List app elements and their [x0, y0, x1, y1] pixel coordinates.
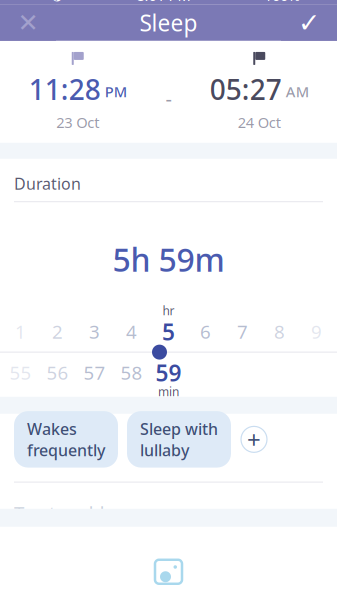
staticText: ◑	[51, 0, 63, 3]
staticText: 55	[9, 360, 31, 385]
staticText: 3	[89, 319, 100, 344]
staticText: 7	[237, 319, 248, 344]
staticText: ✓	[298, 8, 320, 38]
button[interactable]: Sleep with lullaby	[127, 411, 231, 468]
staticText: 57	[83, 360, 105, 385]
button[interactable]: Close	[0, 5, 56, 41]
staticText: 56	[46, 360, 68, 385]
staticText: Wakes frequently	[27, 418, 105, 461]
button[interactable]: 05:27	[181, 51, 337, 132]
button[interactable]: Save	[281, 5, 337, 41]
staticText: -	[165, 85, 171, 112]
staticText: 1	[15, 319, 26, 344]
staticText: 8	[274, 319, 285, 344]
staticText: 100%	[264, 0, 300, 5]
staticText: 23 Oct	[56, 113, 99, 132]
staticText: 59	[155, 358, 181, 388]
staticText: PM	[105, 82, 127, 101]
staticText: 9	[311, 319, 322, 344]
staticText: AM	[286, 82, 309, 101]
staticText: +	[247, 423, 261, 455]
staticText: 05:27	[210, 70, 282, 108]
staticText: 4	[126, 319, 137, 344]
button[interactable]: Wakes frequently	[14, 411, 118, 468]
staticText: 58	[120, 360, 142, 385]
staticText: 24 Oct	[238, 113, 281, 132]
staticText: Duration	[14, 173, 81, 194]
staticText: 11:28	[29, 70, 101, 108]
staticText: Tap to add a memo	[14, 501, 180, 525]
button[interactable]: Add photo	[154, 559, 183, 585]
button[interactable]: Tap to add a memo	[0, 483, 337, 525]
staticText: 5h 59m	[112, 238, 224, 281]
button[interactable]: 11:28	[0, 51, 155, 132]
staticText: 8:01 PM	[136, 0, 190, 5]
staticText: 5	[162, 317, 175, 347]
staticText: Sleep	[139, 8, 197, 38]
staticText: min	[158, 384, 179, 399]
staticText: 6	[200, 319, 211, 344]
button[interactable]: Add tag	[240, 425, 268, 453]
staticText: 2	[52, 319, 63, 344]
staticText: Sleep with lullaby	[140, 418, 218, 461]
staticText: hr	[162, 303, 174, 319]
staticText: ✕	[17, 8, 38, 37]
